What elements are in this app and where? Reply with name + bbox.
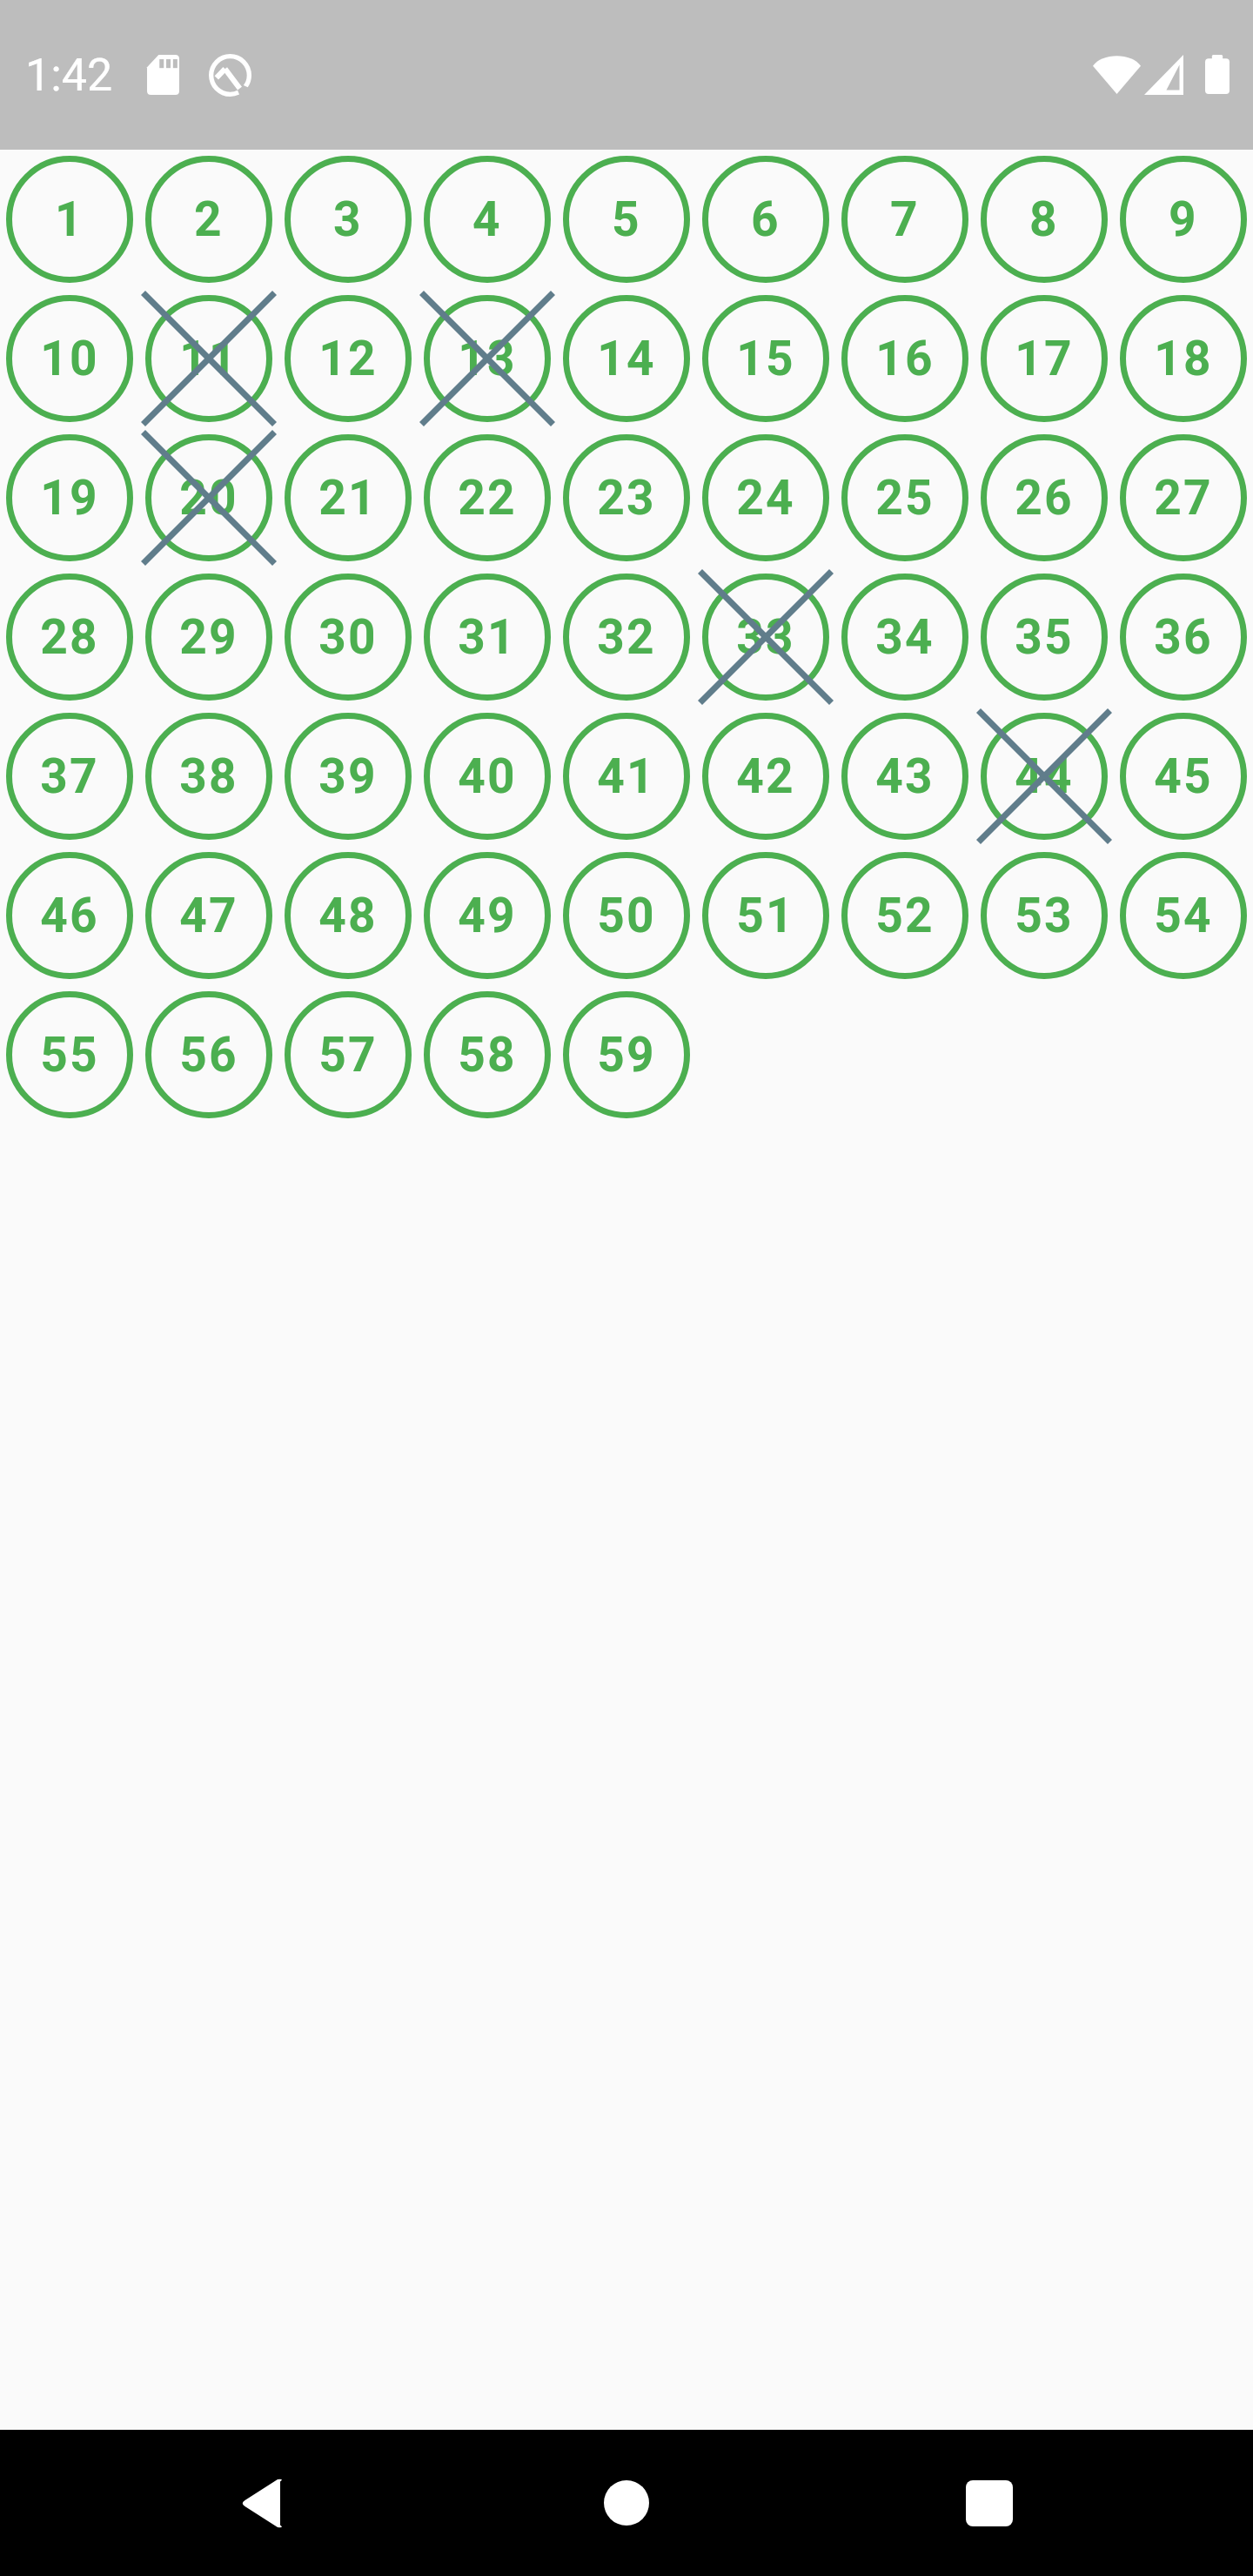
button[interactable]: 44 bbox=[975, 707, 1114, 846]
staticText: 25 bbox=[875, 470, 935, 526]
staticText: 12 bbox=[318, 331, 378, 386]
staticText: 27 bbox=[1154, 470, 1213, 526]
button[interactable]: 47 bbox=[139, 846, 278, 985]
button[interactable]: 43 bbox=[835, 707, 975, 846]
staticText: 38 bbox=[179, 748, 238, 804]
staticText: 45 bbox=[1154, 748, 1213, 804]
button[interactable]: 2 bbox=[139, 150, 278, 289]
staticText: 40 bbox=[458, 748, 517, 804]
button[interactable]: 16 bbox=[835, 289, 975, 428]
staticText: 6 bbox=[751, 191, 781, 247]
staticText: 42 bbox=[736, 748, 795, 804]
button[interactable]: 58 bbox=[418, 985, 557, 1124]
staticText: 2 bbox=[194, 191, 224, 247]
button[interactable]: 20 bbox=[139, 428, 278, 567]
button[interactable]: Recent apps bbox=[916, 2430, 1062, 2576]
button[interactable]: 25 bbox=[835, 428, 975, 567]
button[interactable]: 32 bbox=[557, 567, 696, 707]
staticText: 9 bbox=[1169, 191, 1198, 247]
staticText: 46 bbox=[40, 888, 99, 943]
button[interactable]: 6 bbox=[696, 150, 835, 289]
button[interactable]: 52 bbox=[835, 846, 975, 985]
button[interactable]: Back bbox=[190, 2430, 336, 2576]
staticText: 55 bbox=[40, 1027, 99, 1083]
button[interactable]: 19 bbox=[0, 428, 139, 567]
staticText: 47 bbox=[179, 888, 238, 943]
staticText: 19 bbox=[40, 470, 99, 526]
staticText: 44 bbox=[1015, 748, 1074, 804]
button[interactable]: 35 bbox=[975, 567, 1114, 707]
button[interactable]: 7 bbox=[835, 150, 975, 289]
button[interactable]: 5 bbox=[557, 150, 696, 289]
button[interactable]: 36 bbox=[1114, 567, 1253, 707]
button[interactable]: 24 bbox=[696, 428, 835, 567]
button[interactable]: 13 bbox=[418, 289, 557, 428]
staticText: 43 bbox=[875, 748, 935, 804]
staticText: 13 bbox=[458, 331, 517, 386]
button[interactable]: 3 bbox=[278, 150, 418, 289]
button[interactable]: 48 bbox=[278, 846, 418, 985]
button[interactable]: 28 bbox=[0, 567, 139, 707]
staticText: 22 bbox=[458, 470, 517, 526]
staticText: 33 bbox=[736, 609, 795, 665]
button[interactable]: 17 bbox=[975, 289, 1114, 428]
staticText: 16 bbox=[875, 331, 935, 386]
button[interactable]: 56 bbox=[139, 985, 278, 1124]
button[interactable]: 51 bbox=[696, 846, 835, 985]
button[interactable]: 41 bbox=[557, 707, 696, 846]
button[interactable]: 33 bbox=[696, 567, 835, 707]
staticText: 29 bbox=[179, 609, 238, 665]
staticText: 35 bbox=[1015, 609, 1074, 665]
button[interactable]: 42 bbox=[696, 707, 835, 846]
button[interactable]: 45 bbox=[1114, 707, 1253, 846]
staticText: 57 bbox=[318, 1027, 378, 1083]
button[interactable]: 4 bbox=[418, 150, 557, 289]
button[interactable]: 50 bbox=[557, 846, 696, 985]
staticText: 54 bbox=[1154, 888, 1213, 943]
button[interactable]: 23 bbox=[557, 428, 696, 567]
button[interactable]: 12 bbox=[278, 289, 418, 428]
staticText: 1 bbox=[55, 191, 84, 247]
button[interactable]: 54 bbox=[1114, 846, 1253, 985]
button[interactable]: 34 bbox=[835, 567, 975, 707]
button[interactable]: 15 bbox=[696, 289, 835, 428]
button[interactable]: 46 bbox=[0, 846, 139, 985]
staticText: 11 bbox=[179, 331, 238, 386]
button[interactable]: 22 bbox=[418, 428, 557, 567]
staticText: 50 bbox=[597, 888, 656, 943]
button[interactable]: 26 bbox=[975, 428, 1114, 567]
staticText: 23 bbox=[597, 470, 656, 526]
button[interactable]: 53 bbox=[975, 846, 1114, 985]
staticText: 49 bbox=[458, 888, 517, 943]
staticText: 52 bbox=[875, 888, 935, 943]
button[interactable]: 9 bbox=[1114, 150, 1253, 289]
button[interactable]: 30 bbox=[278, 567, 418, 707]
button[interactable]: 18 bbox=[1114, 289, 1253, 428]
button[interactable]: 11 bbox=[139, 289, 278, 428]
button[interactable]: 27 bbox=[1114, 428, 1253, 567]
staticText: 20 bbox=[179, 470, 238, 526]
staticText: 51 bbox=[736, 888, 795, 943]
button[interactable]: Home bbox=[553, 2430, 700, 2576]
button[interactable]: 38 bbox=[139, 707, 278, 846]
button[interactable]: 8 bbox=[975, 150, 1114, 289]
button[interactable]: 59 bbox=[557, 985, 696, 1124]
button[interactable]: 39 bbox=[278, 707, 418, 846]
staticText: 26 bbox=[1015, 470, 1074, 526]
button[interactable]: 37 bbox=[0, 707, 139, 846]
staticText: 4 bbox=[472, 191, 502, 247]
staticText: 1:42 bbox=[25, 49, 113, 102]
button[interactable]: 21 bbox=[278, 428, 418, 567]
button[interactable]: 55 bbox=[0, 985, 139, 1124]
button[interactable]: 29 bbox=[139, 567, 278, 707]
button[interactable]: 1 bbox=[0, 150, 139, 289]
button[interactable]: 10 bbox=[0, 289, 139, 428]
button[interactable]: 40 bbox=[418, 707, 557, 846]
button[interactable]: 31 bbox=[418, 567, 557, 707]
button[interactable]: 57 bbox=[278, 985, 418, 1124]
button[interactable]: 14 bbox=[557, 289, 696, 428]
staticText: 59 bbox=[597, 1027, 656, 1083]
staticText: 32 bbox=[597, 609, 656, 665]
button[interactable]: 49 bbox=[418, 846, 557, 985]
staticText: 15 bbox=[736, 331, 795, 386]
